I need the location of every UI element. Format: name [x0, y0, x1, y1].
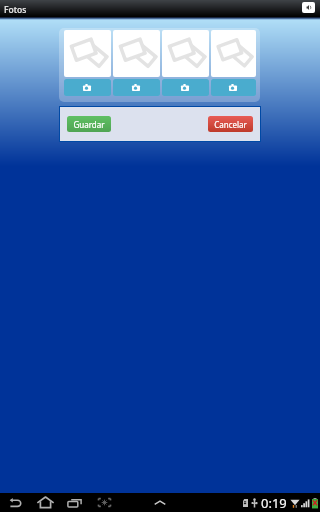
button[interactable]: Tomar foto 3	[162, 79, 209, 96]
staticText: Guardar	[73, 119, 105, 130]
button[interactable]: Back	[9, 496, 23, 510]
button[interactable]: Volumen	[302, 2, 315, 13]
button[interactable]: Foto 4	[211, 30, 256, 77]
staticText: Fotos	[4, 4, 27, 16]
button[interactable]: Screenshot	[97, 495, 112, 510]
button[interactable]: Expand	[153, 496, 167, 510]
button[interactable]: Foto 2	[113, 30, 160, 77]
staticText: 0:19	[261, 494, 287, 512]
button[interactable]: Guardar	[67, 116, 111, 132]
button[interactable]: Recents	[67, 495, 82, 510]
button[interactable]: Foto 1	[64, 30, 111, 77]
button[interactable]: Tomar foto 4	[211, 79, 256, 96]
button[interactable]: Tomar foto 1	[64, 79, 111, 96]
button[interactable]: Cancelar	[208, 116, 253, 132]
staticText: Cancelar	[214, 119, 247, 130]
button[interactable]: Foto 3	[162, 30, 209, 77]
button[interactable]: Tomar foto 2	[113, 79, 160, 96]
button[interactable]: Home	[37, 494, 54, 511]
